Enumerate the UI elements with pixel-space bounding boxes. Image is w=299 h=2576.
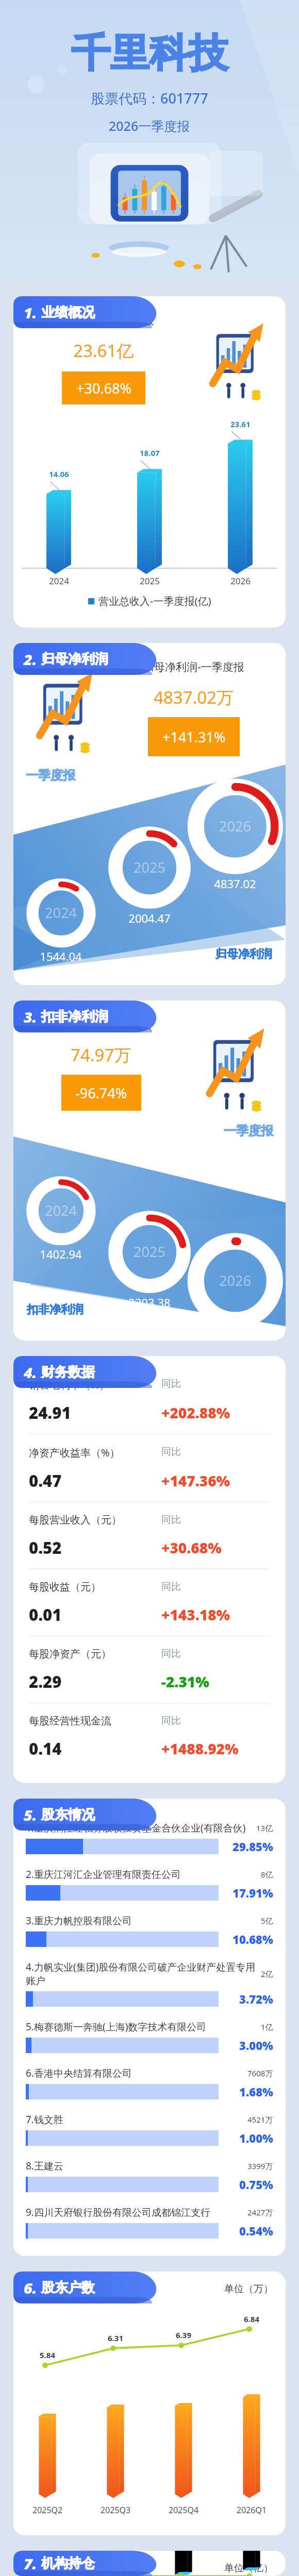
button[interactable]: 每股经营性现金流 — [13, 1715, 286, 1770]
staticText: 3399万 — [247, 2161, 273, 2171]
staticText: 0.54% — [239, 2223, 273, 2239]
staticText: 24.91 — [29, 1402, 71, 1423]
staticText: 4837.02万 — [154, 686, 234, 709]
staticText: 9.四川天府银行股份有限公司成都锦江支行 — [26, 2206, 210, 2219]
button[interactable]: 9.四川天府银行股份有限公司成都锦江支行 — [26, 2206, 273, 2239]
button[interactable]: 每股净资产（元） — [13, 1648, 286, 1715]
staticText: 2025Q2 — [32, 2504, 63, 2516]
staticText: 2.重庆江河汇企业管理有限责任公司 — [26, 1868, 181, 1881]
staticText: 每股营业收入（元） — [29, 1514, 122, 1527]
staticText: 4. — [24, 1362, 37, 1382]
staticText: 单位（万） — [224, 2283, 273, 2295]
staticText: 74.97万 — [71, 1043, 131, 1066]
staticText: 0.01 — [29, 1604, 62, 1625]
staticText: 2026 — [219, 817, 251, 836]
staticText: -2.31% — [161, 1672, 209, 1691]
button[interactable]: 销售毛利率（%） — [13, 1378, 286, 1446]
staticText: 扣非净利润-一季度报 — [51, 1017, 152, 1032]
staticText: 2024 — [49, 575, 69, 587]
staticText: 6.香港中央结算有限公司 — [26, 2066, 132, 2080]
staticText: 一季度报 — [26, 768, 75, 783]
staticText: 业绩概况 — [41, 304, 95, 321]
staticText: 6.31 — [108, 2333, 123, 2343]
staticText: 8亿 — [261, 1869, 273, 1879]
staticText: 财务数据 — [41, 1364, 95, 1381]
staticText: 千里科技 — [71, 29, 228, 78]
staticText: +141.31% — [162, 727, 226, 747]
button[interactable]: 5.梅赛德斯一奔驰(上海)数字技术有限公司 — [26, 2020, 273, 2053]
staticText: 14.06 — [49, 469, 69, 479]
staticText: 13亿 — [256, 1823, 273, 1833]
staticText: 2025Q4 — [169, 2504, 199, 2516]
staticText: +143.18% — [161, 1605, 230, 1624]
staticText: 7.钱文胜 — [26, 2113, 63, 2126]
button[interactable]: 6.香港中央结算有限公司 — [26, 2066, 273, 2099]
staticText: 2025Q3 — [101, 2504, 131, 2516]
staticText: 2亿 — [261, 1969, 273, 1979]
staticText: 归母净利润 — [41, 651, 108, 668]
staticText: 2024 — [45, 1201, 77, 1220]
button[interactable]: 8.王建云 — [26, 2159, 273, 2192]
staticText: 同比 — [161, 1648, 181, 1660]
button[interactable]: +30.68% — [62, 371, 145, 404]
staticText: 4837.02 — [214, 876, 256, 891]
staticText: 2025 — [134, 858, 165, 877]
staticText: 每股收益（元） — [29, 1581, 101, 1594]
staticText: +1488.92% — [161, 1739, 239, 1758]
staticText: 0.75% — [239, 2177, 273, 2192]
button[interactable]: +141.31% — [148, 717, 240, 756]
staticText: 1. — [24, 302, 37, 323]
staticText: 2.29 — [29, 1671, 62, 1692]
staticText: 股东情况 — [41, 1806, 95, 1823]
staticText: 扣非净利润 — [27, 1302, 84, 1317]
staticText: 5.84 — [40, 2350, 55, 2360]
staticText: 股东户数 — [41, 2279, 95, 2296]
staticText: 0.47 — [29, 1470, 62, 1492]
staticText: -96.74% — [75, 1083, 127, 1103]
staticText: 6. — [24, 2278, 37, 2298]
button[interactable]: 7.钱文胜 — [26, 2113, 273, 2146]
button[interactable]: 2.重庆江河汇企业管理有限责任公司 — [26, 1868, 273, 1901]
button[interactable]: -96.74% — [61, 1075, 141, 1111]
staticText: 23.61亿 — [73, 339, 134, 362]
staticText: 2024 — [45, 903, 77, 922]
staticText: 6.39 — [176, 2330, 191, 2340]
button[interactable]: 3.重庆力帆控股有限公司 — [26, 1914, 273, 1947]
staticText: 1.重庆满江红私募股权投资基金合伙企业(有限合伙) — [26, 1821, 246, 1835]
staticText: 3. — [24, 1007, 37, 1027]
staticText: 2026 — [230, 575, 251, 587]
staticText: 2025 — [134, 1242, 165, 1261]
staticText: 8.王建云 — [26, 2159, 63, 2173]
staticText: 2. — [24, 649, 37, 669]
staticText: 3.72% — [239, 1991, 273, 2007]
staticText: 同比 — [161, 1446, 181, 1458]
staticText: 机构持仓 — [41, 2555, 95, 2572]
staticText: 同比 — [161, 1514, 181, 1526]
button[interactable]: 4.力帆实业(集团)股份有限公司破产企业财产处置专用账户 — [26, 1960, 273, 2007]
staticText: 同比 — [161, 1378, 181, 1390]
staticText: 5亿 — [261, 1916, 273, 1926]
staticText: +202.88% — [161, 1403, 230, 1422]
staticText: +147.36% — [161, 1471, 230, 1490]
staticText: 扣非净利润 — [41, 1008, 108, 1025]
staticText: 0.52 — [29, 1537, 62, 1558]
button[interactable]: 净资产收益率（%） — [13, 1446, 286, 1514]
staticText: 一季度报 — [224, 1123, 273, 1139]
staticText: 3.重庆力帆控股有限公司 — [26, 1914, 132, 1927]
staticText: 4521万 — [247, 2114, 273, 2125]
staticText: 归母净利润 — [215, 947, 272, 961]
button[interactable]: 每股收益（元） — [13, 1581, 286, 1648]
button[interactable]: 1.重庆满江红私募股权投资基金合伙企业(有限合伙) — [26, 1821, 273, 1854]
staticText: 净资产收益率（%） — [29, 1446, 120, 1460]
staticText: 2026 — [219, 1271, 251, 1290]
staticText: 10.68% — [232, 1931, 273, 1947]
button[interactable]: 每股营业收入（元） — [13, 1514, 286, 1581]
staticText: 单位（亿） — [224, 2562, 273, 2574]
staticText: 股票代码：601777 — [91, 89, 208, 108]
staticText: 归母净利润-一季度报 — [143, 659, 244, 674]
staticText: 1.68% — [239, 2084, 273, 2099]
staticText: 2026Q1 — [237, 2504, 267, 2516]
staticText: 1402.94 — [40, 1246, 82, 1262]
staticText: 0.14 — [29, 1738, 62, 1759]
